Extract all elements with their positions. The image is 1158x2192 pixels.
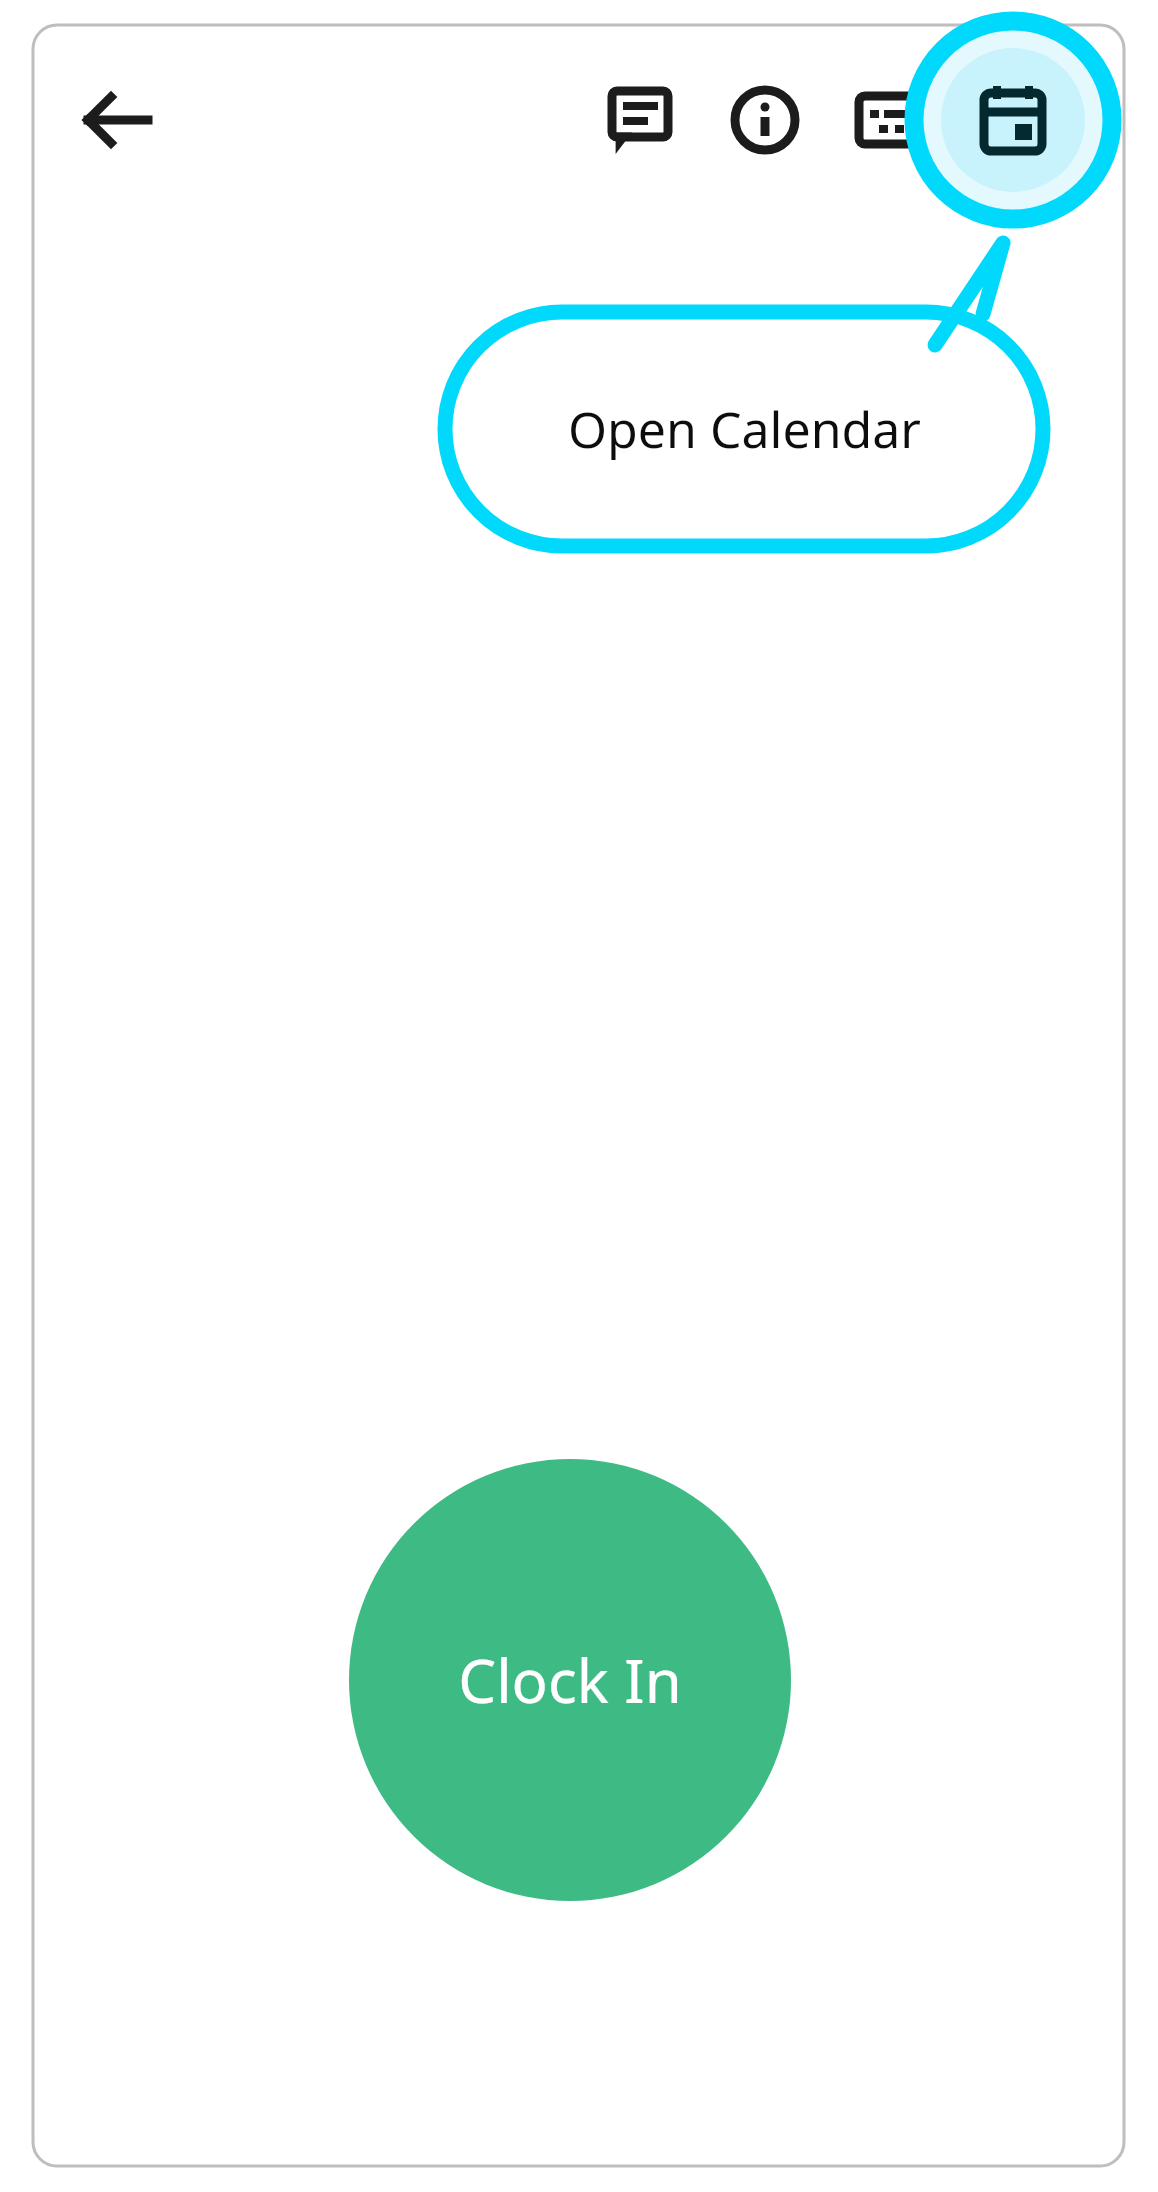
staticText: Open Calendar — [568, 395, 921, 463]
button[interactable]: Back — [70, 72, 166, 168]
staticText: Clock In — [458, 1639, 682, 1721]
button[interactable]: Messages — [592, 72, 688, 168]
button[interactable]: Info — [717, 72, 813, 168]
button[interactable]: Notes — [842, 72, 938, 168]
button[interactable]: Open Calendar — [955, 62, 1071, 178]
button[interactable]: Clock In — [349, 1459, 791, 1901]
button[interactable]: Open Calendar — [445, 312, 1043, 546]
